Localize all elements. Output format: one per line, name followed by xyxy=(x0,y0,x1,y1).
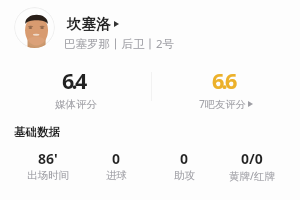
staticText: 巴塞罗那丨后卫丨2号 xyxy=(64,36,175,52)
button[interactable]: 0 xyxy=(82,149,150,183)
staticText: 0/0 xyxy=(241,149,263,168)
button[interactable]: 0 xyxy=(150,149,218,183)
button[interactable]: 86' xyxy=(14,149,82,183)
button[interactable]: Player avatar xyxy=(14,7,300,55)
staticText: 6.6 xyxy=(212,66,235,95)
button[interactable]: 0/0 xyxy=(218,149,286,183)
staticText: 进球 xyxy=(106,169,127,182)
staticText: 坎塞洛 xyxy=(67,15,111,33)
other: Open fan ratings xyxy=(248,101,253,107)
other: Player avatar xyxy=(14,7,55,48)
staticText: 7吧友评分 xyxy=(199,97,246,111)
staticText: 媒体评分 xyxy=(55,98,97,111)
other: Open player profile xyxy=(114,21,119,27)
staticText: 助攻 xyxy=(174,169,195,182)
staticText: 0 xyxy=(180,149,189,168)
button[interactable]: 6.4 xyxy=(0,63,151,113)
staticText: 出场时间 xyxy=(27,169,69,182)
staticText: 基础数据 xyxy=(14,125,60,139)
staticText: 黄牌/红牌 xyxy=(229,169,275,183)
staticText: 6.4 xyxy=(62,66,85,95)
staticText: 0 xyxy=(112,149,121,168)
button[interactable]: 6.6 xyxy=(152,63,300,113)
staticText: 86' xyxy=(38,149,58,168)
